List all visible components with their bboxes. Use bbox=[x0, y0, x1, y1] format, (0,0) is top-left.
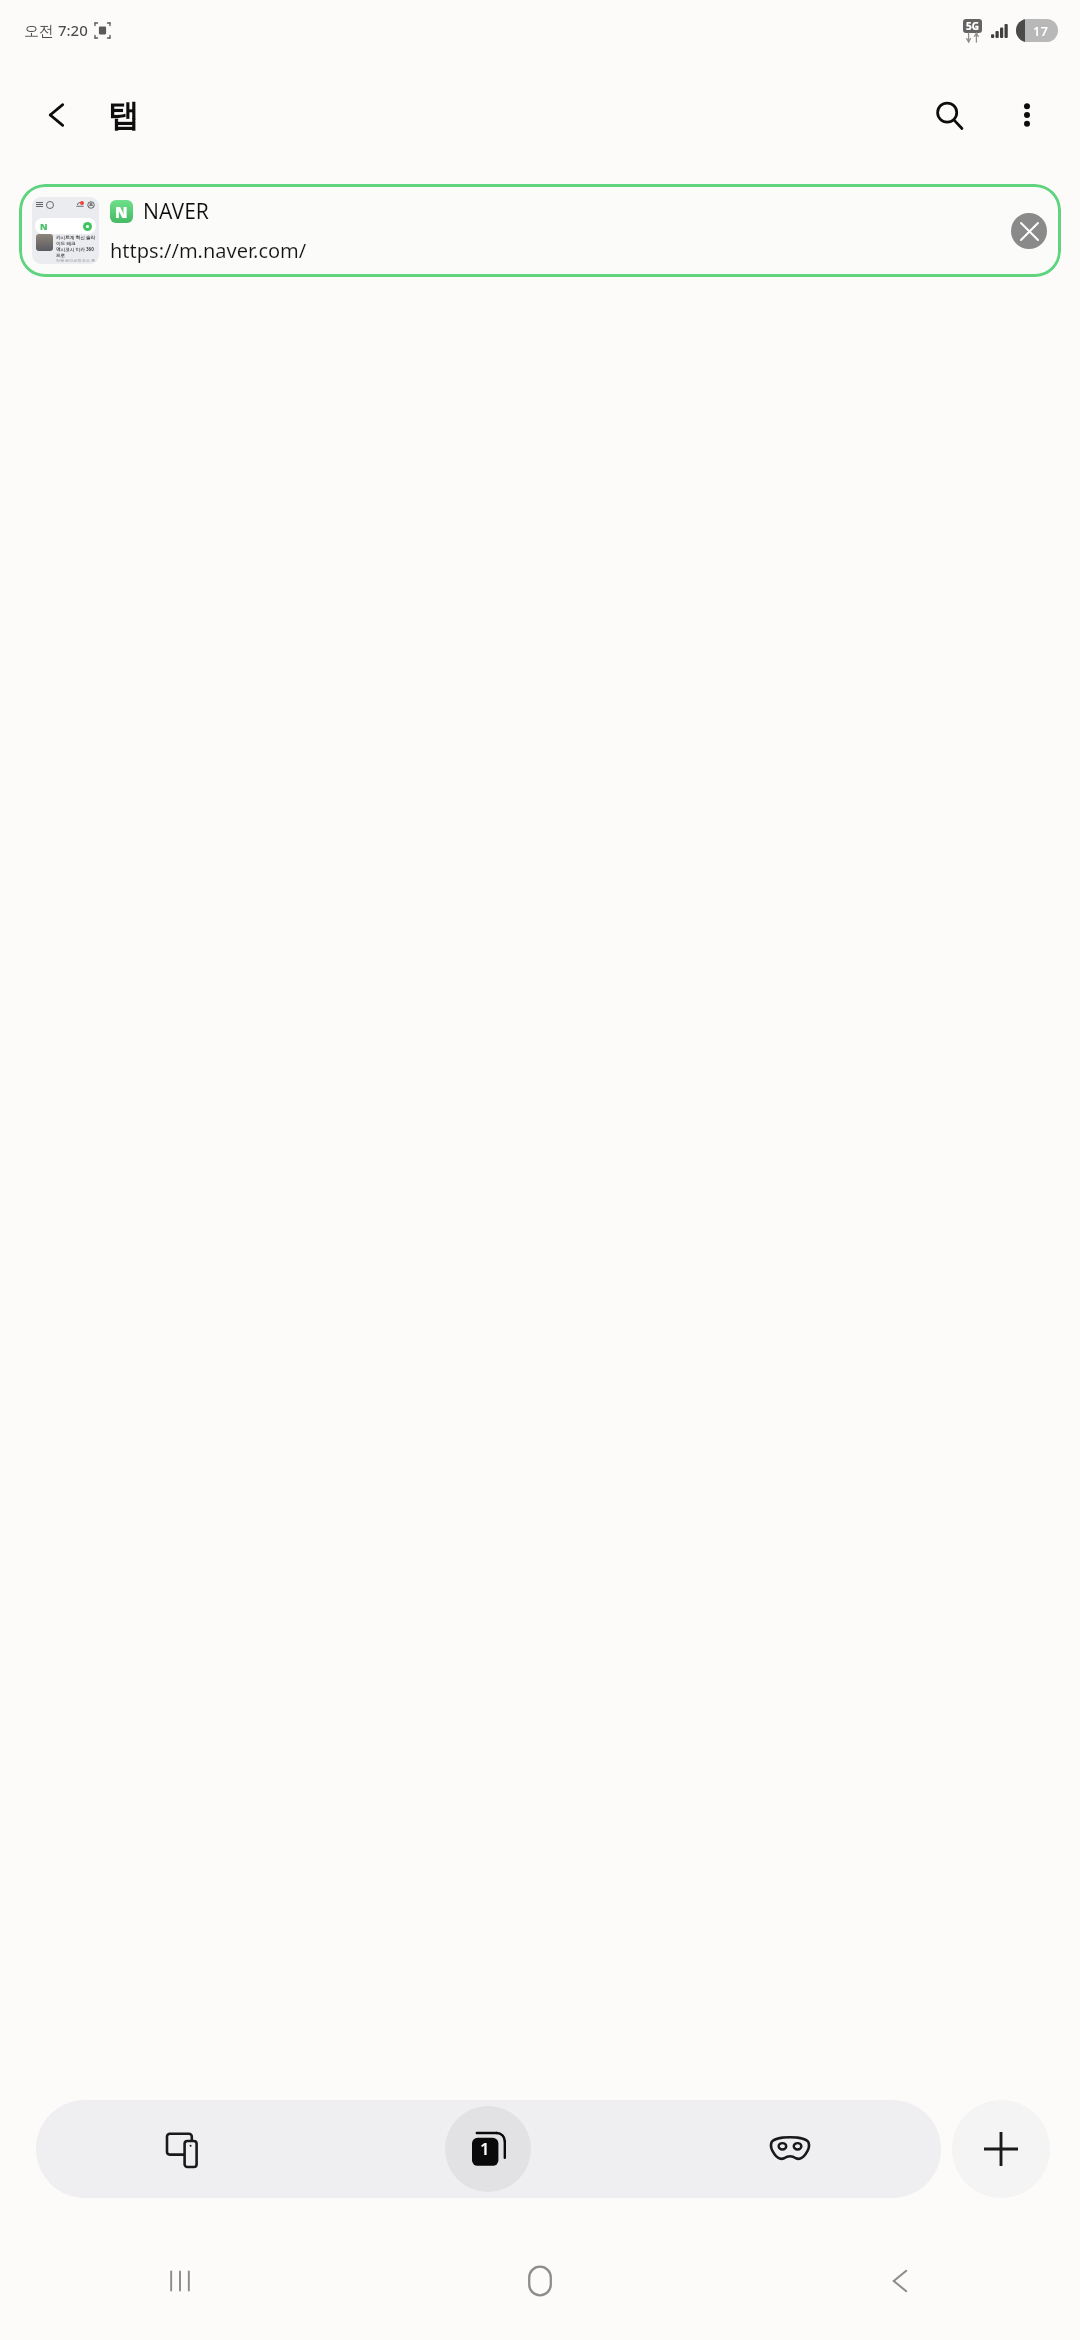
button[interactable]: Tabs bbox=[337, 2100, 639, 2198]
button[interactable]: N bbox=[19, 184, 1061, 277]
staticText: N bbox=[115, 202, 128, 222]
button[interactable]: Secret mode bbox=[639, 2100, 941, 2198]
button[interactable]: Close tab bbox=[1011, 213, 1047, 249]
staticText: 맥시코시 미카 360 프로 bbox=[56, 246, 96, 258]
staticText: 카시트계 혁신 슬라이드 테크 bbox=[56, 234, 96, 246]
staticText: 5G bbox=[966, 19, 979, 33]
staticText: NAVER bbox=[143, 197, 209, 226]
button[interactable]: Home bbox=[360, 2222, 720, 2340]
staticText: 17 bbox=[1033, 22, 1048, 40]
staticText: 탭 bbox=[108, 96, 139, 135]
staticText: 오전 7:20 bbox=[24, 20, 88, 40]
button[interactable]: More options bbox=[996, 84, 1058, 146]
staticText: https://m.naver.com/ bbox=[110, 237, 307, 264]
button[interactable]: New tab bbox=[952, 2100, 1050, 2198]
staticText: 정품 베이비하우스 특가 한정 bbox=[56, 258, 96, 262]
staticText: 1 bbox=[480, 2137, 490, 2160]
button[interactable]: Back bbox=[720, 2222, 1080, 2340]
button[interactable]: Other devices bbox=[36, 2100, 337, 2198]
staticText: N bbox=[40, 220, 48, 232]
button[interactable]: Recents bbox=[0, 2222, 360, 2340]
button[interactable]: Back bbox=[26, 84, 88, 146]
button[interactable]: Search bbox=[918, 84, 980, 146]
